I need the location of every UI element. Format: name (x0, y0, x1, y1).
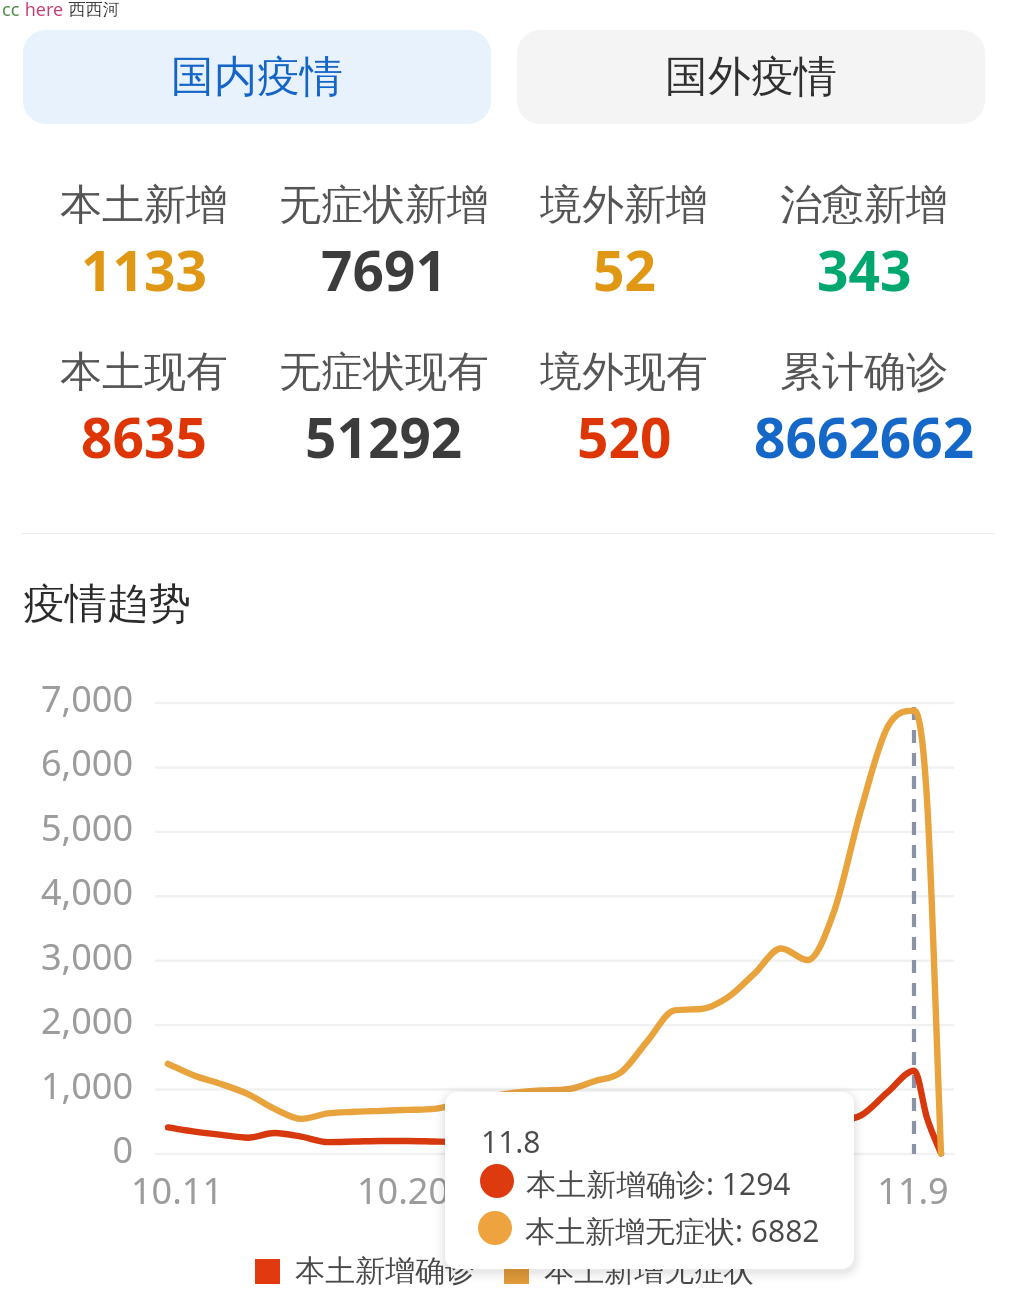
staticText: 境外现有 (540, 346, 708, 399)
staticText: 国内疫情 (171, 50, 343, 104)
button[interactable]: 境外新增 (504, 179, 744, 307)
staticText: 本土新增 (60, 179, 228, 232)
staticText: 520 (577, 399, 672, 474)
staticText: 1,000 (2, 1061, 133, 1110)
staticText: 2,000 (2, 996, 133, 1045)
staticText: 3,000 (2, 932, 133, 981)
button[interactable]: 本土新增 (23, 179, 264, 307)
staticText: 国外疫情 (665, 50, 837, 104)
staticText: 343 (817, 232, 912, 307)
staticText: 累计确诊 (780, 346, 948, 399)
staticText: 51292 (305, 399, 463, 474)
staticText: 疫情趋势 (23, 578, 191, 631)
button[interactable]: 累计确诊 (744, 346, 984, 474)
staticText: 1133 (81, 232, 207, 307)
button[interactable]: 无症状现有 (264, 346, 504, 474)
button[interactable]: 治愈新增 (744, 179, 984, 307)
staticText: 11.9 (823, 1166, 1003, 1215)
staticText: 7691 (321, 232, 447, 307)
staticText: 6,000 (2, 738, 133, 787)
staticText: 本土现有 (60, 346, 228, 399)
button[interactable]: 国内疫情 (23, 30, 491, 124)
staticText: 52 (593, 232, 656, 307)
staticText: 本土新增无症状 (544, 1252, 754, 1290)
staticText: 本土新增确诊: 1294 (526, 1163, 791, 1204)
button[interactable]: 无症状新增 (264, 179, 504, 307)
staticText: cc (2, 0, 20, 22)
staticText: 4,000 (2, 867, 133, 916)
staticText: here (20, 0, 64, 22)
staticText: 10.20 (313, 1166, 493, 1215)
staticText: 8662662 (754, 399, 975, 474)
staticText: 11.8 (481, 1121, 541, 1162)
staticText: 境外新增 (540, 179, 708, 232)
staticText: 7,000 (2, 674, 133, 723)
staticText: 10.29 (539, 1166, 719, 1215)
staticText: 无症状现有 (279, 346, 489, 399)
button[interactable]: 境外现有 (504, 346, 744, 474)
staticText: 10.11 (87, 1166, 267, 1215)
staticText: 无症状新增 (279, 179, 489, 232)
staticText: 8635 (81, 399, 207, 474)
button[interactable]: 国外疫情 (517, 30, 985, 124)
staticText: 本土新增确诊 (295, 1252, 475, 1290)
staticText: 本土新增无症状: 6882 (525, 1210, 820, 1251)
staticText: 0 (2, 1125, 133, 1174)
staticText: 治愈新增 (780, 179, 948, 232)
staticText: 西西河 (64, 0, 120, 20)
button[interactable]: 本土现有 (23, 346, 264, 474)
staticText: 5,000 (2, 803, 133, 852)
